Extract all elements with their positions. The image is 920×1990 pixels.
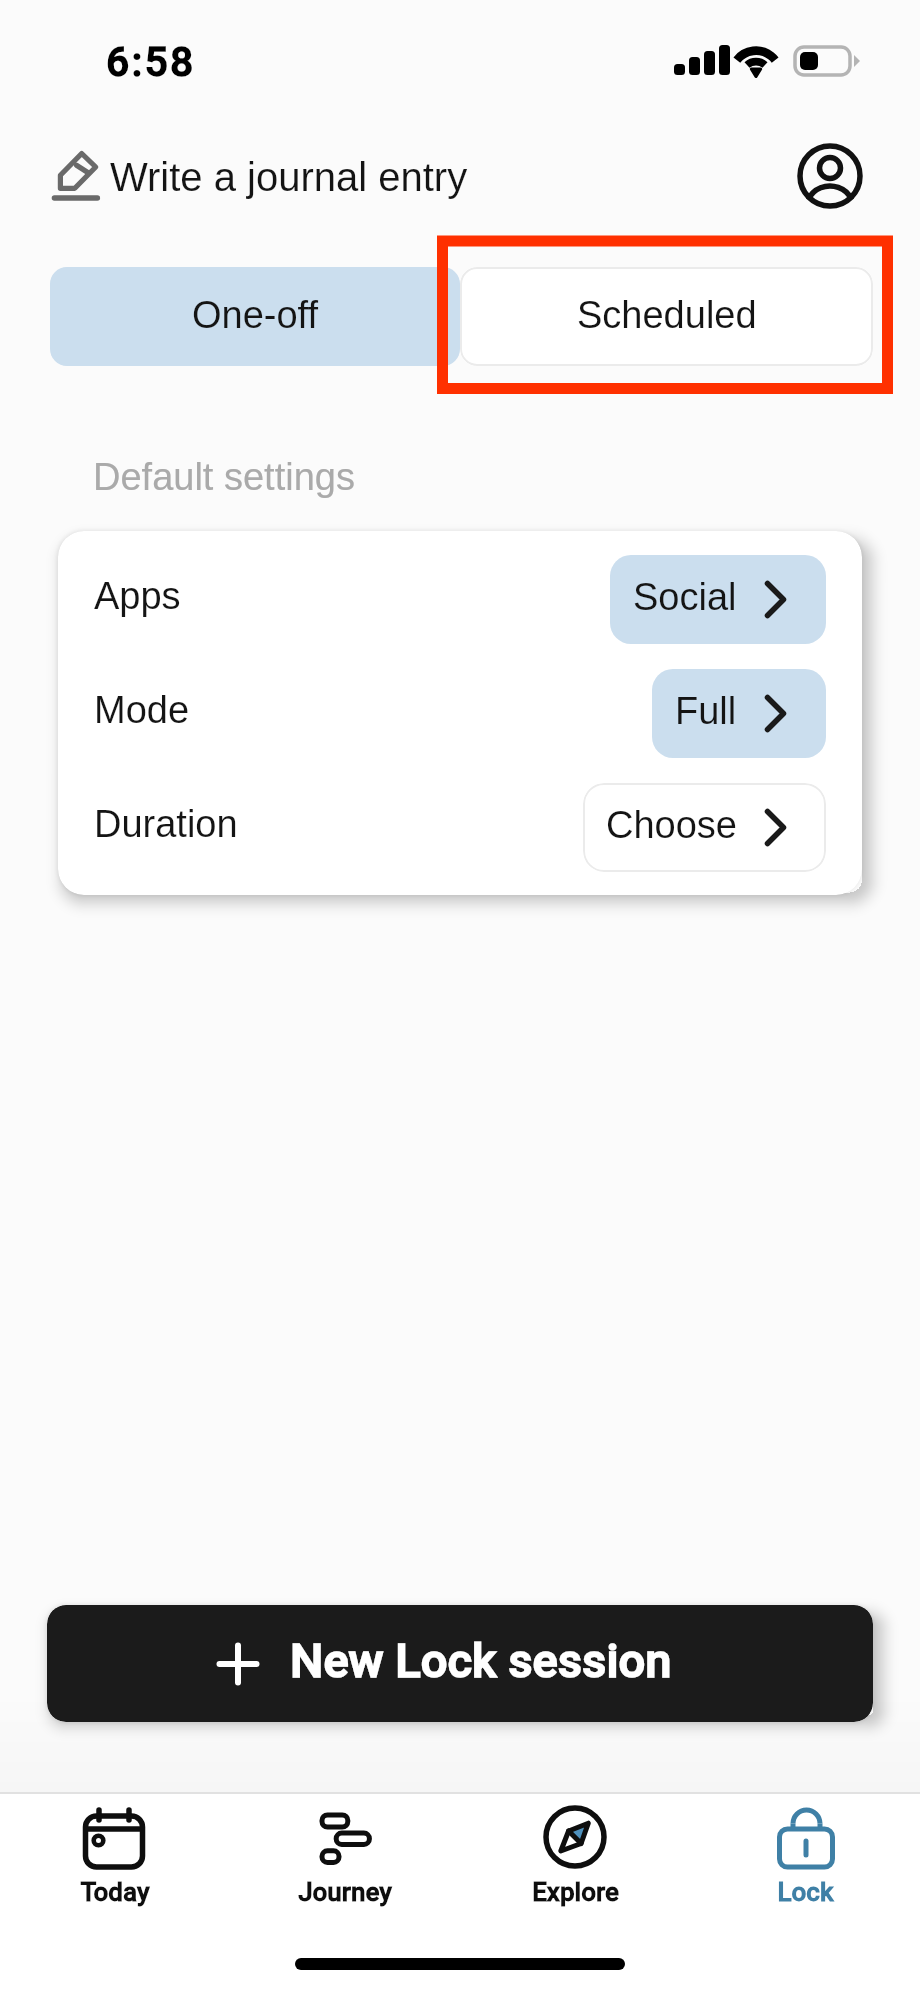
staticText: One-off (192, 294, 319, 336)
staticText: New Lock session (290, 1633, 672, 1688)
button[interactable]: One-off (50, 267, 460, 366)
button[interactable]: Today (0, 1794, 230, 1924)
staticText: Mode (94, 689, 190, 731)
staticText: Choose (606, 804, 737, 846)
staticText: Journey (298, 1877, 392, 1907)
staticText: Duration (94, 803, 238, 845)
button[interactable]: Write a journal entry (50, 146, 468, 208)
button[interactable]: Scheduled (460, 267, 873, 366)
staticText: Default settings (93, 456, 355, 498)
staticText: Social (633, 576, 737, 618)
staticText: Write a journal entry (110, 155, 468, 200)
button[interactable]: Social (610, 555, 826, 644)
button[interactable]: Explore (460, 1794, 690, 1924)
button[interactable]: Journey (230, 1794, 460, 1924)
staticText: Scheduled (577, 294, 757, 336)
staticText: Lock (777, 1877, 834, 1907)
staticText: 6:58 (106, 38, 196, 86)
button[interactable]: New Lock session (47, 1605, 873, 1722)
button[interactable]: Lock (690, 1794, 920, 1924)
staticText: Full (675, 690, 737, 732)
staticText: Explore (532, 1877, 619, 1907)
button[interactable]: Full (652, 669, 826, 758)
button[interactable]: Choose (583, 783, 826, 872)
staticText: Today (80, 1877, 150, 1907)
button[interactable]: Profile (797, 143, 863, 209)
staticText: Apps (94, 575, 181, 617)
